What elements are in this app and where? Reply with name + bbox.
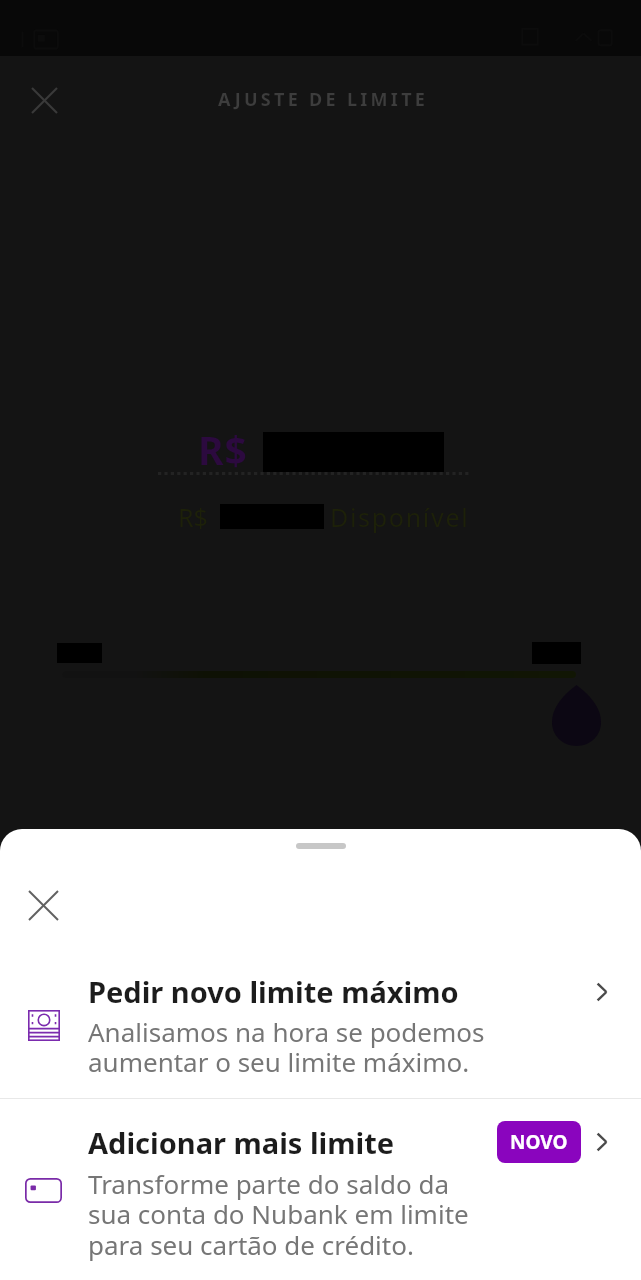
staticText: Analisamos na hora se podemos aumentar o…	[88, 1014, 485, 1080]
staticText: R$	[178, 500, 208, 534]
staticText: NOVO	[510, 1129, 568, 1155]
staticText: AJUSTE DE LIMITE	[218, 87, 429, 112]
staticText: Transforme parte do saldo da sua conta d…	[88, 1166, 469, 1263]
staticText: R$	[198, 423, 248, 476]
staticText: Disponível	[330, 500, 470, 534]
staticText: Adicionar mais limite	[88, 1123, 497, 1162]
button[interactable]: Fechar ajuste	[16, 72, 72, 128]
staticText: Pedir novo limite máximo	[88, 972, 591, 1011]
button[interactable]: Adicionar mais limite	[0, 1099, 641, 1280]
button[interactable]: Fechar	[15, 877, 72, 934]
button[interactable]: Pedir novo limite máximo	[0, 952, 641, 1098]
